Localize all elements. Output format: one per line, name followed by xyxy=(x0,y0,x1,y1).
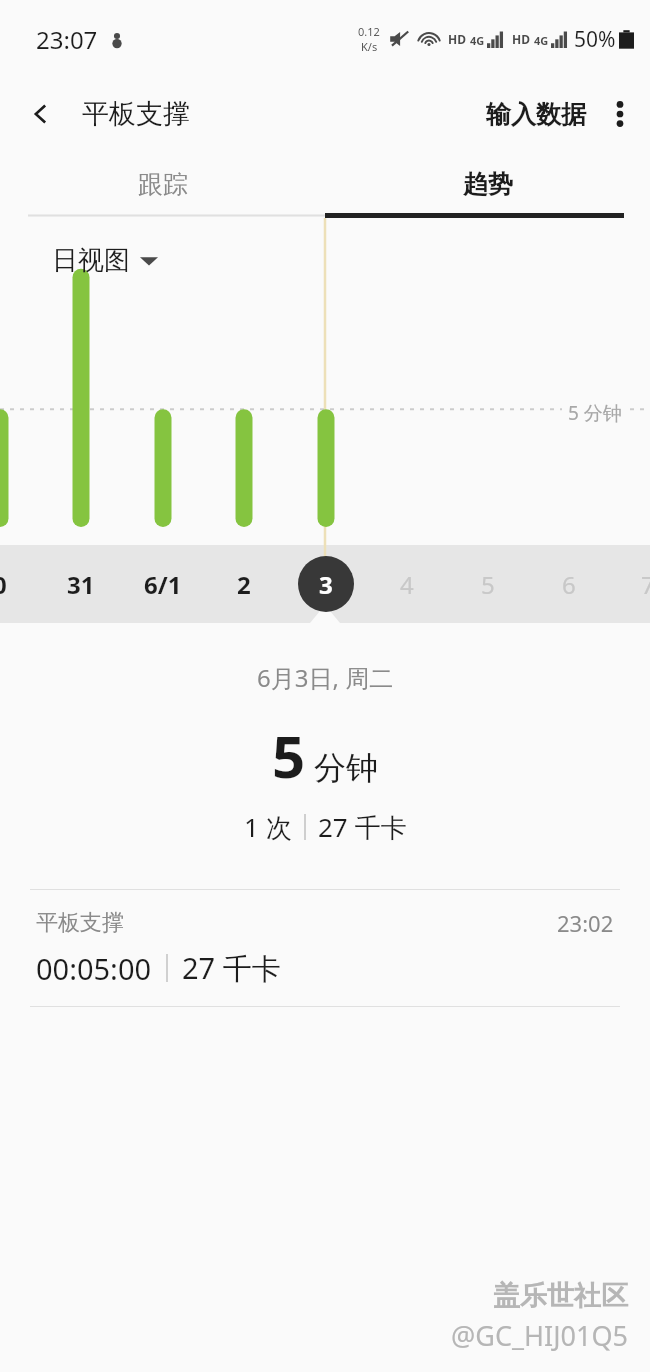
staticText: 6月3日, 周二 xyxy=(257,661,394,694)
staticText: HD xyxy=(512,31,530,47)
staticText: 27 千卡 xyxy=(182,948,281,988)
button[interactable]: 输入数据 xyxy=(480,89,592,140)
staticText: 输入数据 xyxy=(486,99,586,130)
button[interactable]: 0 xyxy=(0,554,30,614)
staticText: 跟踪 xyxy=(138,169,188,200)
button[interactable]: 3 xyxy=(296,554,356,614)
staticText: @GC_HIJ01Q5 xyxy=(451,1317,628,1354)
staticText: 00:05:00 xyxy=(36,949,152,988)
button[interactable]: More options xyxy=(602,88,638,140)
button[interactable]: 日视图 xyxy=(40,236,170,285)
staticText: 0 xyxy=(0,568,7,601)
staticText: 平板支撑 xyxy=(82,97,190,131)
button[interactable]: 6 xyxy=(539,554,599,614)
staticText: 盖乐世社区 xyxy=(493,1279,628,1313)
staticText: 日视图 xyxy=(52,244,130,277)
staticText: 31 xyxy=(67,568,95,601)
staticText: HD xyxy=(448,31,466,47)
staticText: 5 xyxy=(272,716,306,795)
staticText: 7 xyxy=(641,568,650,601)
button[interactable]: 31 xyxy=(51,554,111,614)
staticText: 27 千卡 xyxy=(318,809,407,845)
staticText: 6/1 xyxy=(144,568,182,601)
staticText: 2 xyxy=(237,568,251,601)
button[interactable]: 6/1 xyxy=(133,554,193,614)
staticText: 3 xyxy=(319,568,333,601)
staticText: 4G xyxy=(470,33,485,48)
staticText: 23:02 xyxy=(557,908,614,938)
button[interactable]: 7 xyxy=(618,554,650,614)
button[interactable]: 5 xyxy=(458,554,518,614)
button[interactable]: 跟踪 xyxy=(0,150,325,218)
button[interactable]: 2 xyxy=(214,554,274,614)
button[interactable]: Back xyxy=(0,93,62,135)
staticText: 平板支撑 xyxy=(36,909,124,937)
staticText: 23:07 xyxy=(36,23,98,56)
staticText: 5 分钟 xyxy=(568,400,622,426)
staticText: 分钟 xyxy=(314,748,378,788)
button[interactable]: 4 xyxy=(377,554,437,614)
staticText: 1 次 xyxy=(244,809,292,845)
staticText: 4G xyxy=(534,33,549,48)
staticText: 趋势 xyxy=(463,169,513,200)
button[interactable]: 平板支撑 xyxy=(78,91,194,137)
button[interactable]: 趋势 xyxy=(325,150,650,218)
staticText: 4 xyxy=(400,568,414,601)
button[interactable]: 平板支撑 xyxy=(0,890,650,1006)
staticText: 0.12 xyxy=(358,24,380,39)
staticText: K/s xyxy=(361,39,378,54)
staticText: 50% xyxy=(574,25,616,54)
staticText: 6 xyxy=(562,568,576,601)
staticText: 5 xyxy=(481,568,495,601)
